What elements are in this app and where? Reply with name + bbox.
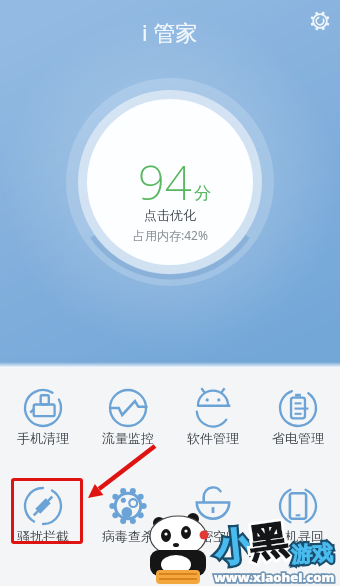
staticText: 黑 [246, 516, 290, 568]
staticText: 流量监控 [102, 430, 154, 446]
button[interactable]: 骚扰拦截 [0, 486, 85, 544]
staticText: i 管家 [142, 17, 198, 47]
button[interactable]: 省电管理 [255, 388, 340, 446]
staticText: 小 [213, 522, 254, 573]
button[interactable]: 病毒查杀 [85, 486, 170, 544]
button[interactable]: 私密空间 [170, 486, 255, 544]
staticText: 小 [213, 522, 254, 573]
button[interactable]: 流量监控 [85, 388, 170, 446]
staticText: www.xiaohei.com [214, 568, 335, 586]
button[interactable]: 手机寻回 [255, 486, 340, 544]
staticText: 游戏 [290, 540, 334, 568]
button[interactable] [308, 9, 332, 33]
staticText: 点击优化 [144, 207, 196, 223]
button[interactable]: 手机清理 [0, 388, 85, 446]
staticText: www.xiaohei.com [214, 568, 335, 586]
staticText: 黑 [246, 516, 290, 568]
staticText: 私密空间 [187, 528, 239, 544]
staticText: 骚扰拦截 [17, 528, 69, 544]
staticText: 手机寻回 [272, 528, 324, 544]
button[interactable] [87, 120, 253, 286]
staticText: 病毒查杀 [102, 528, 154, 544]
staticText: 占用内存:42% [133, 227, 208, 243]
staticText: 分 [194, 183, 211, 204]
staticText: 软件管理 [187, 430, 239, 446]
staticText: 94 [138, 150, 192, 214]
button[interactable]: 软件管理 [170, 388, 255, 446]
staticText: 手机清理 [17, 430, 69, 446]
staticText: 游戏 [290, 540, 334, 568]
staticText: 省电管理 [272, 430, 324, 446]
